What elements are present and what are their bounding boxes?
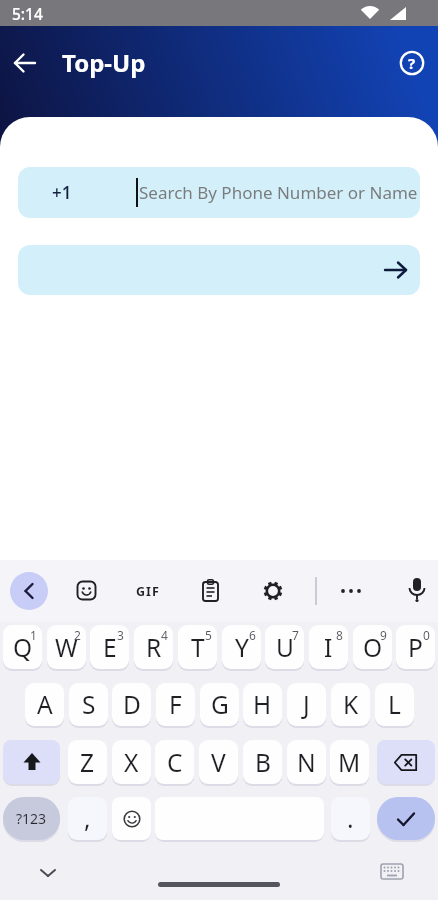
button[interactable]: V xyxy=(199,740,238,784)
button[interactable]: O xyxy=(353,625,392,669)
button[interactable] xyxy=(377,797,435,840)
staticText: Y xyxy=(235,631,249,664)
staticText: T xyxy=(191,631,205,664)
staticText: I xyxy=(324,631,333,664)
staticText: O xyxy=(363,631,383,664)
staticText: Search By Phone Number or Name xyxy=(139,181,418,204)
button[interactable] xyxy=(76,580,98,602)
button[interactable] xyxy=(112,797,151,840)
button[interactable]: W xyxy=(47,625,86,669)
staticText: Z xyxy=(80,746,95,779)
staticText: +1 xyxy=(52,181,72,204)
staticText: N xyxy=(297,746,316,779)
button[interactable]: I xyxy=(309,625,348,669)
staticText: E xyxy=(103,631,117,664)
staticText: C xyxy=(167,746,183,779)
button[interactable] xyxy=(380,863,404,881)
button[interactable]: P xyxy=(396,625,435,669)
button[interactable] xyxy=(377,740,435,784)
staticText: Q xyxy=(13,631,33,664)
staticText: U xyxy=(276,631,294,664)
button[interactable]: Z xyxy=(68,740,107,784)
button[interactable]: . xyxy=(331,797,370,840)
staticText: F xyxy=(169,688,182,721)
staticText: ?123 xyxy=(16,809,47,828)
button[interactable]: , xyxy=(68,797,107,840)
staticText: 6 xyxy=(249,627,256,643)
staticText: G xyxy=(211,688,229,721)
button[interactable] xyxy=(406,577,428,605)
button[interactable]: R xyxy=(134,625,173,669)
staticText: A xyxy=(37,688,53,721)
staticText: 5:14 xyxy=(12,3,43,24)
button[interactable]: J xyxy=(287,683,326,726)
staticText: GIF xyxy=(136,583,160,600)
staticText: ? xyxy=(408,53,416,73)
button[interactable]: Y xyxy=(222,625,261,669)
staticText: . xyxy=(347,802,354,835)
staticText: Top-Up xyxy=(62,46,146,78)
button[interactable] xyxy=(18,245,420,295)
button[interactable]: G xyxy=(200,683,239,726)
button[interactable] xyxy=(338,580,364,602)
staticText: R xyxy=(146,631,162,664)
button[interactable]: F xyxy=(156,683,195,726)
button[interactable]: T xyxy=(178,625,217,669)
button[interactable]: +1 xyxy=(18,167,420,218)
button[interactable]: A xyxy=(25,683,64,726)
staticText: H xyxy=(253,688,272,721)
button[interactable] xyxy=(10,572,48,610)
staticText: D xyxy=(123,688,141,721)
button[interactable]: D xyxy=(112,683,151,726)
staticText: 7 xyxy=(292,627,299,643)
staticText: K xyxy=(343,688,359,721)
button[interactable]: E xyxy=(90,625,129,669)
button[interactable]: U xyxy=(265,625,304,669)
staticText: 5 xyxy=(205,627,212,643)
staticText: L xyxy=(388,688,401,721)
button[interactable]: Q xyxy=(3,625,42,669)
button[interactable]: ? xyxy=(396,47,428,79)
staticText: 4 xyxy=(161,627,168,643)
button[interactable]: C xyxy=(155,740,194,784)
button[interactable]: B xyxy=(243,740,282,784)
staticText: 8 xyxy=(336,627,343,643)
button[interactable] xyxy=(262,580,284,602)
button[interactable]: X xyxy=(112,740,151,784)
staticText: 1 xyxy=(30,627,37,643)
button[interactable]: ?123 xyxy=(3,797,60,840)
staticText: B xyxy=(255,746,271,779)
button[interactable] xyxy=(158,882,280,887)
button[interactable] xyxy=(3,740,60,784)
staticText: V xyxy=(211,746,226,779)
staticText: J xyxy=(303,688,310,721)
button[interactable]: N xyxy=(287,740,326,784)
button[interactable] xyxy=(36,865,60,881)
staticText: , xyxy=(84,802,91,835)
staticText: X xyxy=(124,746,139,779)
button[interactable]: S xyxy=(69,683,108,726)
staticText: M xyxy=(338,746,361,779)
staticText: 0 xyxy=(423,627,430,643)
button[interactable] xyxy=(201,579,221,603)
button[interactable]: M xyxy=(330,740,369,784)
staticText: 9 xyxy=(380,627,387,643)
button[interactable] xyxy=(8,46,42,80)
staticText: 3 xyxy=(117,627,124,643)
button[interactable]: K xyxy=(331,683,370,726)
staticText: S xyxy=(82,688,96,721)
staticText: 2 xyxy=(74,627,81,643)
staticText: P xyxy=(408,631,423,664)
staticText: W xyxy=(55,631,78,664)
button[interactable]: L xyxy=(375,683,414,726)
button[interactable]: H xyxy=(243,683,282,726)
